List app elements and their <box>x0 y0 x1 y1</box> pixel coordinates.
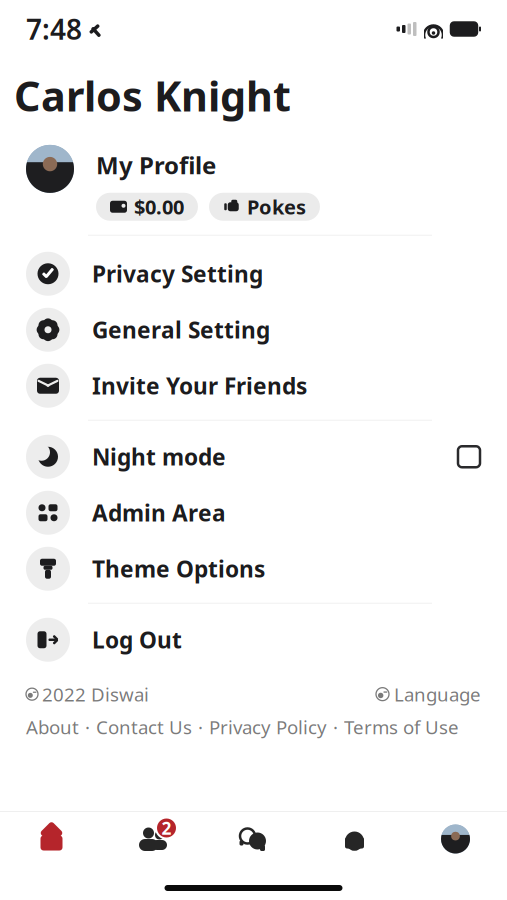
button[interactable]: $0.00 <box>96 193 198 221</box>
button[interactable]: Contact Us <box>96 714 192 739</box>
staticText: Carlos Knight <box>14 68 291 123</box>
staticText: General Setting <box>92 315 270 345</box>
button[interactable]: Privacy Setting <box>0 246 507 302</box>
button[interactable]: Privacy Policy <box>209 714 327 739</box>
button[interactable]: My Profile <box>0 123 507 221</box>
staticText: Privacy Policy <box>209 714 327 739</box>
staticText: · <box>85 714 90 739</box>
staticText: 2 <box>161 816 171 839</box>
staticText: Admin Area <box>92 498 226 528</box>
staticText: Language <box>394 682 481 707</box>
staticText: Log Out <box>92 625 182 655</box>
button[interactable]: About <box>26 714 79 739</box>
staticText: About <box>26 714 79 739</box>
staticText: Terms of Use <box>344 714 459 739</box>
staticText: Privacy Setting <box>92 259 263 289</box>
staticText: 7:48 <box>26 10 82 48</box>
button[interactable]: Profile <box>405 812 506 866</box>
button[interactable]: Pokes <box>209 193 320 221</box>
staticText: Contact Us <box>96 714 192 739</box>
staticText: 2022 Diswai <box>42 682 149 707</box>
button[interactable]: Messages <box>203 812 304 866</box>
button[interactable]: Log Out <box>0 612 507 668</box>
button[interactable]: Notifications <box>304 812 405 866</box>
staticText: Invite Your Friends <box>92 371 307 401</box>
button[interactable]: Invite Your Friends <box>0 358 507 414</box>
button[interactable]: Home <box>1 812 102 866</box>
staticText: Night mode <box>92 442 226 472</box>
button[interactable]: Language <box>376 682 481 707</box>
staticText: · <box>198 714 203 739</box>
staticText: My Profile <box>96 149 216 181</box>
button[interactable]: Admin Area <box>0 485 507 541</box>
button[interactable]: Theme Options <box>0 541 507 597</box>
button[interactable]: Night mode <box>0 429 507 485</box>
button[interactable]: Terms of Use <box>344 714 459 739</box>
staticText: · <box>333 714 338 739</box>
staticText: $0.00 <box>134 193 184 220</box>
button[interactable]: Friends <box>102 812 203 866</box>
staticText: Theme Options <box>92 554 265 584</box>
staticText: Pokes <box>247 193 306 220</box>
button[interactable]: General Setting <box>0 302 507 358</box>
